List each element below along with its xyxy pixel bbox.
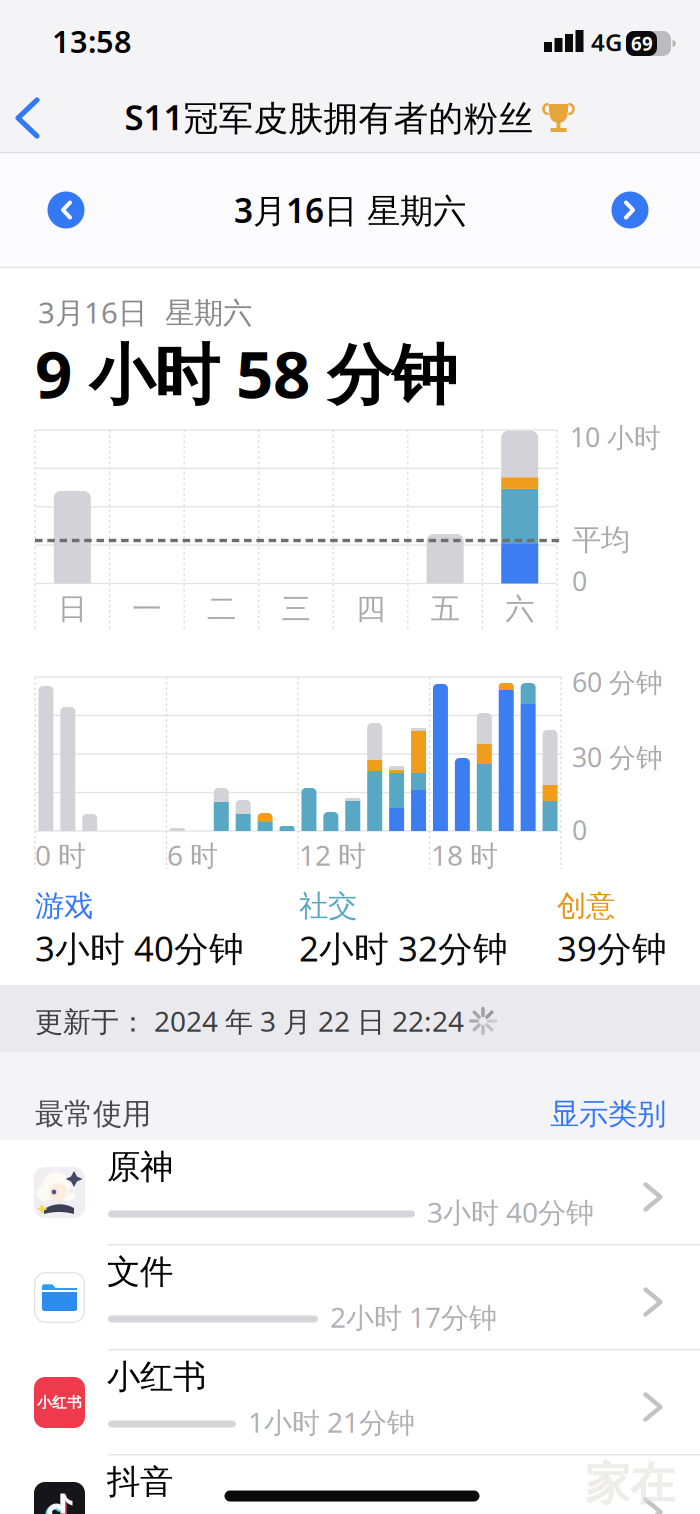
staticText: 显示类别 xyxy=(550,1096,666,1132)
button[interactable]: 原神 xyxy=(0,1140,700,1245)
staticText: 文件 xyxy=(107,1251,173,1292)
staticText: 五 xyxy=(431,591,460,627)
staticText: 小红书 xyxy=(37,1393,82,1411)
staticText: 0 xyxy=(572,563,587,599)
staticText: 39分钟 xyxy=(557,925,667,971)
button[interactable]: 小红书 xyxy=(0,1350,700,1455)
staticText: 6 时 xyxy=(167,836,218,874)
staticText: 日 xyxy=(58,591,87,627)
staticText: 抖音 xyxy=(107,1461,173,1502)
staticText: 小红书 xyxy=(107,1356,206,1397)
staticText: 3小时 40分钟 xyxy=(35,925,244,971)
staticText: 60 分钟 xyxy=(572,664,663,700)
staticText: S11冠军皮肤拥有者的粉丝 xyxy=(124,94,533,140)
button[interactable]: 抖音 xyxy=(0,1455,700,1514)
staticText: 最常使用 xyxy=(35,1096,151,1132)
button[interactable]: Back xyxy=(6,96,62,140)
staticText: 12 时 xyxy=(299,836,366,874)
staticText: 0 xyxy=(572,812,587,848)
staticText: 9 小时 58 分钟 xyxy=(35,330,457,416)
staticText: 游戏 xyxy=(35,888,93,924)
staticText: 1小时 21分钟 xyxy=(248,1403,415,1441)
staticText: 13:58 xyxy=(52,21,132,61)
staticText: 4G xyxy=(591,26,622,58)
staticText: 一 xyxy=(132,591,161,627)
staticText: 3小时 40分钟 xyxy=(427,1193,594,1231)
staticText: 2小时 17分钟 xyxy=(330,1298,497,1336)
staticText: 社交 xyxy=(299,888,357,924)
staticText: 二 xyxy=(207,591,236,627)
staticText: 30 分钟 xyxy=(572,739,663,775)
staticText: 更新于： 2024 年 3 月 22 日 22:24 xyxy=(35,1002,464,1040)
staticText: 0 时 xyxy=(35,836,86,874)
staticText: 69 xyxy=(631,31,653,56)
staticText: 四 xyxy=(356,591,385,627)
staticText: 平均 xyxy=(572,522,630,558)
button[interactable]: 后一天 xyxy=(611,191,648,228)
staticText: 3月16日 星期六 xyxy=(234,188,466,232)
staticText: 三 xyxy=(281,591,310,627)
staticText: 2小时 32分钟 xyxy=(299,925,508,971)
button[interactable]: 前一天 xyxy=(47,191,84,228)
staticText: 创意 xyxy=(557,888,615,924)
button[interactable]: 显示类别 xyxy=(506,1092,666,1136)
staticText: 3月16日 星期六 xyxy=(38,292,252,331)
staticText: 家在 xyxy=(585,1456,675,1512)
button[interactable]: 文件 xyxy=(0,1245,700,1350)
staticText: 18 时 xyxy=(431,836,498,874)
staticText: 10 小时 xyxy=(570,419,661,455)
staticText: 原神 xyxy=(107,1146,173,1187)
staticText: 六 xyxy=(505,591,534,627)
